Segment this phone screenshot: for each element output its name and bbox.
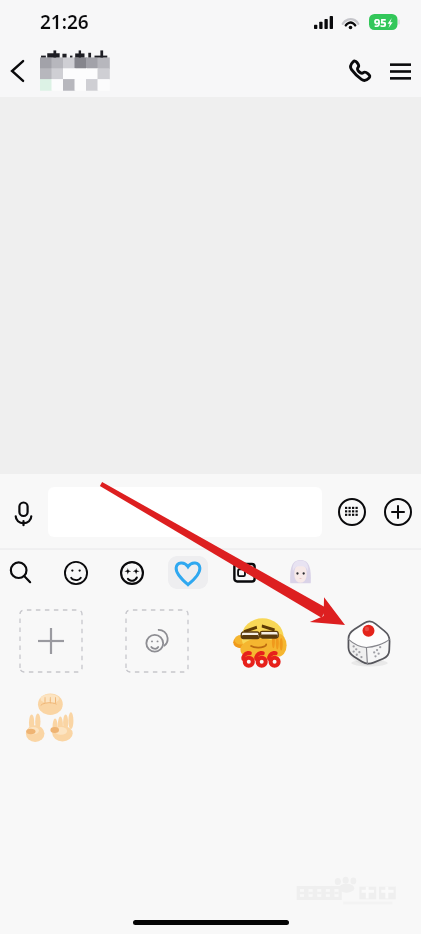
button[interactable]: More options [375, 489, 421, 535]
button[interactable]: Voice message [2, 490, 46, 534]
staticText: 95 [374, 15, 387, 30]
button[interactable]: Menu [380, 51, 420, 91]
button[interactable]: Rock paper scissors sticker [20, 690, 82, 752]
button[interactable]: Add sticker [20, 610, 82, 672]
button[interactable]: Dice sticker [337, 610, 399, 672]
button[interactable]: Favourites [168, 556, 208, 589]
button[interactable]: Sticker gallery [112, 556, 152, 589]
button[interactable]: Sticker pack [224, 556, 264, 589]
button[interactable]: 666 sticker [231, 610, 293, 672]
button[interactable] [48, 487, 322, 537]
button[interactable]: Search [0, 556, 40, 589]
button[interactable]: Emoji keyboard [329, 489, 375, 535]
staticText: 21:26 [40, 9, 89, 35]
button[interactable]: Emoji [56, 556, 96, 589]
button[interactable]: Back [0, 54, 34, 88]
button[interactable]: Call [332, 51, 372, 91]
button[interactable]: Avatar stickers [280, 556, 320, 589]
button[interactable]: Manage stickers [126, 610, 188, 672]
